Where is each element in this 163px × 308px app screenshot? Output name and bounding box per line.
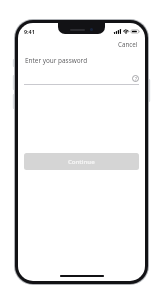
button[interactable]: Help — [24, 73, 139, 84]
staticText: ? — [135, 76, 137, 82]
staticText: Cancel — [118, 40, 138, 48]
button[interactable]: Help — [132, 75, 139, 82]
staticText: 9:41 — [24, 28, 35, 35]
staticText: Continue — [68, 158, 95, 166]
button[interactable]: Continue — [24, 153, 139, 170]
staticText: Enter your password — [25, 56, 88, 65]
button[interactable]: Cancel — [115, 38, 141, 50]
